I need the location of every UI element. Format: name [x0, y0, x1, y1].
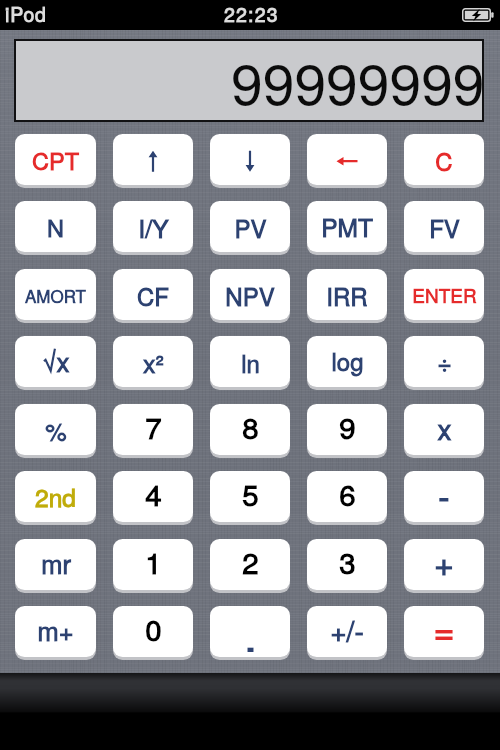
button[interactable]: NPV [210, 269, 290, 320]
staticText: +/- [330, 610, 364, 650]
staticText: 0 [145, 607, 162, 649]
staticText: CF [137, 278, 169, 312]
button[interactable]: . [210, 606, 290, 657]
staticText: 5 [242, 472, 259, 514]
staticText: 8 [242, 405, 259, 447]
button[interactable]: AMORT [15, 269, 96, 320]
staticText: = [433, 606, 455, 654]
button[interactable]: 0 [113, 606, 193, 657]
staticText: FV [429, 210, 460, 244]
staticText: + [434, 539, 454, 586]
staticText: I/Y [138, 209, 169, 245]
staticText: ln [241, 345, 260, 379]
button[interactable]: 5 [210, 471, 290, 522]
button[interactable]: IRR [307, 269, 387, 320]
staticText: NPV [225, 278, 275, 312]
staticText: . [244, 606, 257, 652]
button[interactable]: CF [113, 269, 193, 320]
staticText: ÷ [437, 343, 452, 379]
button[interactable]: 8 [210, 404, 290, 455]
button[interactable]: +/- [307, 606, 387, 657]
button[interactable]: CPT [15, 134, 96, 185]
button[interactable]: log [307, 336, 387, 387]
button[interactable]: % [15, 404, 96, 455]
button[interactable]: - [404, 471, 484, 522]
staticText: mr [41, 545, 71, 582]
button[interactable]: 4 [113, 471, 193, 522]
staticText: C [435, 143, 453, 177]
staticText: m+ [37, 612, 74, 649]
staticText: 6 [339, 472, 356, 514]
staticText: AMORT [25, 283, 86, 307]
staticText: PV [234, 210, 267, 244]
button[interactable]: FV [404, 201, 484, 252]
staticText: 2 [242, 540, 259, 582]
staticText: ENTER [412, 281, 477, 308]
button[interactable]: Up [113, 134, 193, 185]
button[interactable]: x² [113, 336, 193, 387]
staticText: x² [143, 344, 164, 380]
button[interactable]: m+ [15, 606, 96, 657]
button[interactable]: mr [15, 539, 96, 590]
staticText: 9 [339, 405, 356, 447]
staticText: iPod [5, 0, 47, 28]
button[interactable]: = [404, 606, 484, 657]
button[interactable]: 7 [113, 404, 193, 455]
button[interactable]: I/Y [113, 201, 193, 252]
staticText: IRR [326, 278, 368, 312]
button[interactable]: ÷ [404, 336, 484, 387]
staticText: x [437, 408, 452, 448]
staticText: % [45, 413, 67, 447]
button[interactable]: 3 [307, 539, 387, 590]
staticText: 1 [145, 540, 162, 582]
staticText: 99999999 [231, 40, 485, 119]
other: Battery charging [462, 8, 494, 22]
staticText: √x [42, 342, 70, 379]
button[interactable]: + [404, 539, 484, 590]
staticText: 3 [339, 540, 356, 582]
button[interactable]: x [404, 404, 484, 455]
button[interactable]: Back [307, 134, 387, 185]
staticText: N [47, 210, 64, 244]
staticText: PMT [321, 209, 373, 244]
staticText: 4 [145, 472, 162, 514]
staticText: 2nd [35, 479, 76, 514]
button[interactable]: N [15, 201, 96, 252]
staticText: 22:23 [224, 0, 279, 28]
button[interactable]: PV [210, 201, 290, 252]
button[interactable]: 9 [307, 404, 387, 455]
button[interactable]: 2nd [15, 471, 96, 522]
button[interactable]: ln [210, 336, 290, 387]
staticText: - [438, 471, 450, 519]
staticText: 7 [145, 405, 162, 447]
button[interactable]: 6 [307, 471, 387, 522]
staticText: CPT [32, 143, 79, 177]
button[interactable]: 2 [210, 539, 290, 590]
button[interactable]: Down [210, 134, 290, 185]
button[interactable]: ENTER [404, 269, 484, 320]
button[interactable]: 1 [113, 539, 193, 590]
button[interactable]: C [404, 134, 484, 185]
button[interactable]: √x [15, 336, 96, 387]
button[interactable]: PMT [307, 201, 387, 252]
staticText: log [331, 343, 364, 377]
